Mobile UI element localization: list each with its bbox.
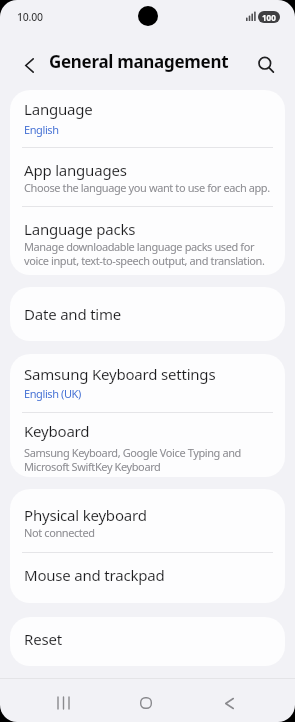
button[interactable] [16, 52, 42, 78]
button[interactable] [131, 688, 161, 718]
staticText: App languages [24, 160, 127, 180]
button[interactable]: Language [10, 90, 285, 147]
button[interactable]: App languages [10, 148, 285, 206]
staticText: Date and time [24, 304, 122, 324]
button[interactable]: Language packs [10, 207, 285, 275]
staticText: Samsung Keyboard settings [24, 364, 216, 384]
staticText: Keyboard [24, 421, 90, 441]
staticText: Mouse and trackpad [24, 565, 165, 585]
button[interactable]: Physical keyboard [10, 489, 285, 552]
button[interactable] [253, 52, 279, 78]
staticText: Physical keyboard [24, 505, 147, 525]
staticText: English (UK) [24, 386, 81, 401]
staticText: Reset [24, 629, 62, 649]
button[interactable]: Date and time [10, 287, 285, 341]
button[interactable]: Keyboard [10, 413, 285, 477]
staticText: Samsung Keyboard, Google Voice Typing an… [24, 445, 241, 475]
button[interactable] [214, 688, 244, 718]
staticText: Not connected [24, 525, 95, 540]
staticText: Language packs [24, 219, 136, 239]
staticText: Manage downloadable language packs used … [24, 239, 265, 269]
button[interactable] [48, 688, 78, 718]
staticText: Choose the language you want to use for … [24, 180, 270, 195]
button[interactable]: Samsung Keyboard settings [10, 354, 285, 412]
staticText: English [24, 122, 59, 137]
staticText: General management [49, 50, 229, 73]
staticText: 100 [262, 12, 276, 23]
button[interactable]: Mouse and trackpad [10, 553, 285, 603]
staticText: Language [24, 99, 93, 119]
button[interactable]: Reset [10, 617, 285, 666]
staticText: 10.00 [17, 10, 43, 24]
